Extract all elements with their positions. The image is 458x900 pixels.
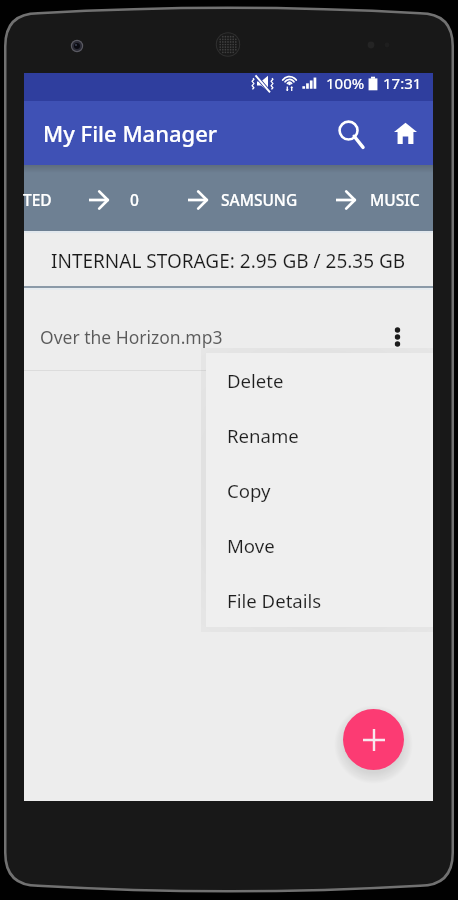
- button[interactable]: Search: [325, 109, 379, 163]
- button[interactable]: File Details: [206, 573, 433, 627]
- staticText: TED: [23, 189, 52, 210]
- staticText: SAMSUNG: [221, 189, 298, 210]
- button[interactable]: TED: [23, 165, 53, 233]
- staticText: MUSIC: [370, 189, 420, 210]
- staticText: Delete: [227, 368, 284, 393]
- staticText: Over the Horizon.mp3: [40, 325, 223, 349]
- staticText: My File Manager: [43, 118, 218, 148]
- button[interactable]: Rename: [206, 408, 433, 463]
- button[interactable]: Home: [378, 106, 432, 160]
- staticText: Copy: [227, 478, 271, 503]
- button[interactable]: Delete: [206, 353, 433, 408]
- staticText: Move: [227, 533, 275, 558]
- staticText: INTERNAL STORAGE: 2.95 GB / 25.35 GB: [51, 248, 406, 274]
- button[interactable]: MUSIC: [370, 165, 420, 233]
- button[interactable]: More options: [374, 314, 420, 360]
- button[interactable]: Move: [206, 518, 433, 573]
- button[interactable]: INTERNAL STORAGE: 2.95 GB / 25.35 GB: [24, 233, 433, 288]
- staticText: 17:31: [383, 73, 422, 93]
- staticText: Rename: [227, 423, 299, 448]
- button[interactable]: Add: [343, 709, 404, 770]
- button[interactable]: 0: [130, 165, 166, 233]
- staticText: 100%: [326, 73, 365, 93]
- staticText: 0: [130, 189, 139, 210]
- button[interactable]: SAMSUNG: [221, 165, 301, 233]
- button[interactable]: Over the Horizon.mp3: [24, 290, 433, 371]
- staticText: File Details: [227, 588, 322, 613]
- button[interactable]: Copy: [206, 463, 433, 518]
